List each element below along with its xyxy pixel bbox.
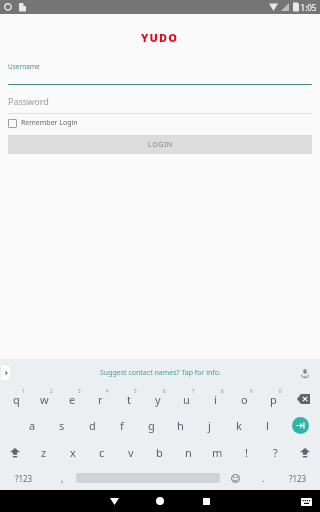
button[interactable]: j bbox=[195, 412, 224, 439]
staticText: b bbox=[156, 445, 163, 460]
staticText: h bbox=[177, 418, 184, 433]
button[interactable]: Next bbox=[282, 412, 318, 439]
staticText: n bbox=[185, 445, 192, 460]
button[interactable]: q bbox=[2, 386, 30, 412]
staticText: i bbox=[214, 392, 217, 407]
button[interactable]: m bbox=[203, 439, 232, 466]
staticText: m bbox=[212, 445, 223, 460]
staticText: 3 bbox=[78, 388, 81, 394]
staticText: 6 bbox=[163, 388, 166, 394]
staticText: YUDO bbox=[141, 30, 179, 45]
button[interactable]: , bbox=[48, 466, 76, 490]
staticText: v bbox=[128, 445, 134, 460]
button[interactable]: Shift bbox=[290, 439, 320, 466]
button[interactable]: v bbox=[116, 439, 145, 466]
staticText: e bbox=[69, 392, 76, 407]
staticText: 1 bbox=[22, 388, 25, 394]
staticText: c bbox=[99, 445, 105, 460]
button[interactable]: l bbox=[253, 412, 282, 439]
staticText: 9 bbox=[250, 388, 253, 394]
staticText: p bbox=[270, 392, 277, 407]
staticText: ! bbox=[245, 445, 248, 460]
staticText: LOGIN bbox=[148, 140, 173, 150]
staticText: g bbox=[148, 418, 155, 433]
button[interactable]: c bbox=[87, 439, 116, 466]
staticText: 11:05 bbox=[296, 2, 317, 13]
staticText: a bbox=[29, 418, 36, 433]
button[interactable]: p bbox=[259, 386, 288, 412]
staticText: 5 bbox=[134, 388, 137, 394]
button[interactable]: u bbox=[172, 386, 201, 412]
staticText: x bbox=[70, 445, 76, 460]
button[interactable]: Voice input bbox=[298, 366, 312, 380]
staticText: 4 bbox=[106, 388, 109, 394]
button[interactable]: Home bbox=[137, 490, 183, 512]
button[interactable]: Switch keyboard bbox=[299, 496, 313, 507]
button[interactable]: ?123 bbox=[276, 466, 320, 490]
button[interactable]: g bbox=[137, 412, 166, 439]
button[interactable]: b bbox=[145, 439, 174, 466]
button[interactable]: Shift bbox=[0, 439, 30, 466]
staticText: ?123 bbox=[15, 473, 33, 484]
button[interactable]: x bbox=[58, 439, 87, 466]
button[interactable]: t bbox=[114, 386, 143, 412]
button[interactable]: s bbox=[47, 412, 77, 439]
staticText: t bbox=[127, 392, 131, 407]
button[interactable]: ?123 bbox=[0, 466, 48, 490]
button[interactable]: . bbox=[250, 466, 276, 490]
button[interactable]: z bbox=[30, 439, 58, 466]
staticText: ? bbox=[273, 445, 278, 460]
staticText: 7 bbox=[192, 388, 195, 394]
button[interactable]: h bbox=[166, 412, 195, 439]
staticText: y bbox=[155, 392, 161, 407]
staticText: 0 bbox=[279, 388, 282, 394]
staticText: d bbox=[89, 418, 96, 433]
staticText: ?123 bbox=[289, 473, 307, 484]
staticText: f bbox=[120, 418, 124, 433]
staticText: o bbox=[241, 392, 248, 407]
button[interactable]: ! bbox=[232, 439, 261, 466]
button[interactable]: Password bbox=[8, 95, 312, 114]
staticText: k bbox=[236, 418, 242, 433]
button[interactable]: o bbox=[230, 386, 259, 412]
button[interactable]: k bbox=[224, 412, 253, 439]
button[interactable]: Remember Login bbox=[8, 118, 78, 128]
staticText: Username bbox=[8, 62, 40, 71]
button[interactable]: Backspace bbox=[288, 386, 318, 412]
staticText: Remember Login bbox=[21, 118, 78, 128]
button[interactable]: LOGIN bbox=[8, 135, 312, 154]
staticText: r bbox=[98, 392, 103, 407]
staticText: . bbox=[262, 472, 265, 484]
staticText: , bbox=[61, 472, 64, 484]
staticText: u bbox=[183, 392, 190, 407]
staticText: 2 bbox=[50, 388, 53, 394]
button[interactable]: w bbox=[30, 386, 58, 412]
button[interactable]: Suggest contact names? Tap for info. bbox=[100, 368, 221, 378]
button[interactable]: e bbox=[58, 386, 86, 412]
button[interactable]: Username bbox=[8, 62, 312, 85]
button[interactable]: Recents bbox=[183, 490, 229, 512]
button[interactable]: ? bbox=[261, 439, 290, 466]
staticText: w bbox=[40, 392, 49, 407]
button[interactable]: n bbox=[174, 439, 203, 466]
staticText: 8 bbox=[221, 388, 224, 394]
staticText: l bbox=[266, 418, 269, 433]
staticText: j bbox=[208, 418, 211, 433]
button[interactable]: f bbox=[107, 412, 137, 439]
staticText: q bbox=[13, 392, 20, 407]
staticText: z bbox=[41, 445, 47, 460]
staticText: Password bbox=[8, 95, 49, 107]
staticText: s bbox=[59, 418, 65, 433]
button[interactable]: y bbox=[143, 386, 172, 412]
button[interactable]: d bbox=[77, 412, 107, 439]
button[interactable]: a bbox=[17, 412, 47, 439]
button[interactable]: Back bbox=[91, 490, 137, 512]
button[interactable]: Emoji bbox=[220, 466, 250, 490]
button[interactable]: r bbox=[86, 386, 114, 412]
button[interactable]: i bbox=[201, 386, 230, 412]
button[interactable]: Expand suggestions bbox=[1, 365, 10, 380]
